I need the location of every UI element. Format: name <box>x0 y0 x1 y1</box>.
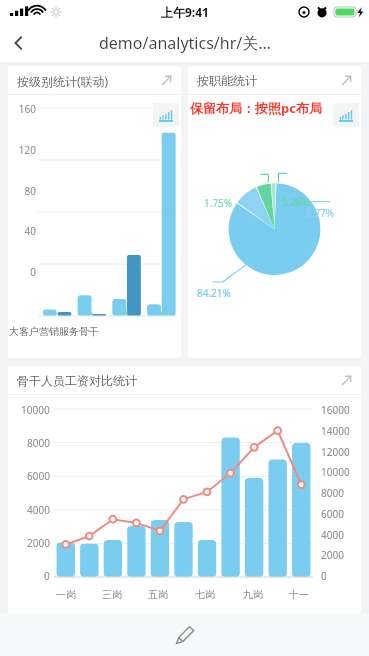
staticText: 16000 <box>321 403 350 417</box>
button[interactable]: Chart type <box>333 103 359 127</box>
staticText: 4000 <box>321 528 344 542</box>
staticText: 0 <box>44 569 50 583</box>
staticText: 5.26% <box>282 195 311 209</box>
other: Expand <box>341 375 352 386</box>
button[interactable]: 按职能统计 <box>188 66 361 358</box>
staticText: 8.77% <box>306 206 335 220</box>
staticText: 大客户营销服务骨干 <box>9 325 99 338</box>
staticText: 10000 <box>321 465 350 479</box>
staticText: 按职能统计 <box>197 73 257 88</box>
staticText: 1.75% <box>204 196 233 210</box>
staticText: 0 <box>321 569 327 583</box>
staticText: 七岗 <box>195 588 215 601</box>
staticText: 6000 <box>321 507 344 521</box>
staticText: 九岗 <box>243 588 263 601</box>
staticText: 0 <box>10 265 36 279</box>
staticText: demo/analytics/hr/关… <box>99 32 271 54</box>
staticText: 4000 <box>27 503 50 517</box>
staticText: 五岗 <box>148 588 168 601</box>
staticText: 6000 <box>27 469 50 483</box>
staticText: 14000 <box>321 424 350 438</box>
other: Expand <box>341 75 352 86</box>
staticText: 40 <box>10 224 36 238</box>
staticText: 2000 <box>321 548 344 562</box>
button[interactable]: Edit <box>165 615 205 655</box>
button[interactable]: 骨干人员工资对比统计 <box>8 366 361 613</box>
staticText: 12000 <box>321 445 350 459</box>
staticText: 按级别统计(联动) <box>17 73 109 89</box>
staticText: 10000 <box>21 403 50 417</box>
staticText: 骨干人员工资对比统计 <box>17 373 137 388</box>
staticText: 160 <box>10 102 36 116</box>
other: Expand <box>161 75 172 86</box>
staticText: 84.21% <box>197 286 231 300</box>
button[interactable]: Chart type <box>153 103 179 127</box>
button[interactable]: Back <box>0 24 38 62</box>
staticText: 十一岗 <box>289 588 313 601</box>
staticText: 120 <box>10 143 36 157</box>
staticText: 上午9:41 <box>161 4 209 20</box>
button[interactable]: 按级别统计(联动) <box>8 66 181 358</box>
staticText: 三岗 <box>102 588 122 601</box>
staticText: 一岗 <box>56 588 76 601</box>
staticText: 8000 <box>27 436 50 450</box>
staticText: 2000 <box>27 536 50 550</box>
staticText: 80 <box>10 184 36 198</box>
staticText: 保留布局：按照pc布局 <box>190 99 322 117</box>
staticText: 8000 <box>321 486 344 500</box>
